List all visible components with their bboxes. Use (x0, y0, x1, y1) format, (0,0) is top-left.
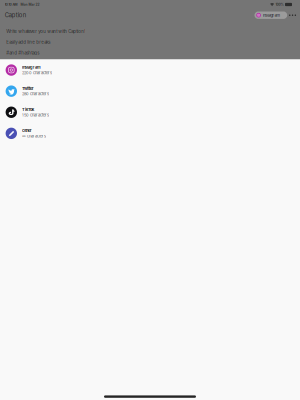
staticText: Instagram (263, 13, 281, 18)
staticText: #and #hashtags (6, 50, 39, 55)
button[interactable]: Instagram (0, 59, 300, 81)
staticText: TikTok (22, 107, 34, 112)
staticText: Mon Mar 22 (21, 2, 40, 6)
staticText: 2200 characters (22, 70, 52, 75)
button[interactable]: TikTok (0, 102, 300, 123)
staticText: 10:10 AM (5, 2, 18, 6)
button[interactable]: Other (0, 123, 300, 144)
staticText: Other (22, 128, 32, 133)
button[interactable]: Instagram (254, 11, 287, 19)
staticText: Easily add line breaks (6, 39, 50, 45)
staticText: Instagram (22, 65, 41, 70)
button[interactable]: More options (288, 11, 297, 19)
button[interactable]: Twitter (0, 81, 300, 102)
staticText: Write whatever you want with Caption! (6, 29, 85, 34)
staticText: Caption (5, 12, 26, 19)
staticText: ∞ characters (22, 134, 46, 138)
staticText: 100% (276, 2, 284, 6)
staticText: 150 characters (22, 112, 49, 117)
staticText: Twitter (22, 86, 34, 91)
staticText: 280 characters (22, 91, 49, 96)
